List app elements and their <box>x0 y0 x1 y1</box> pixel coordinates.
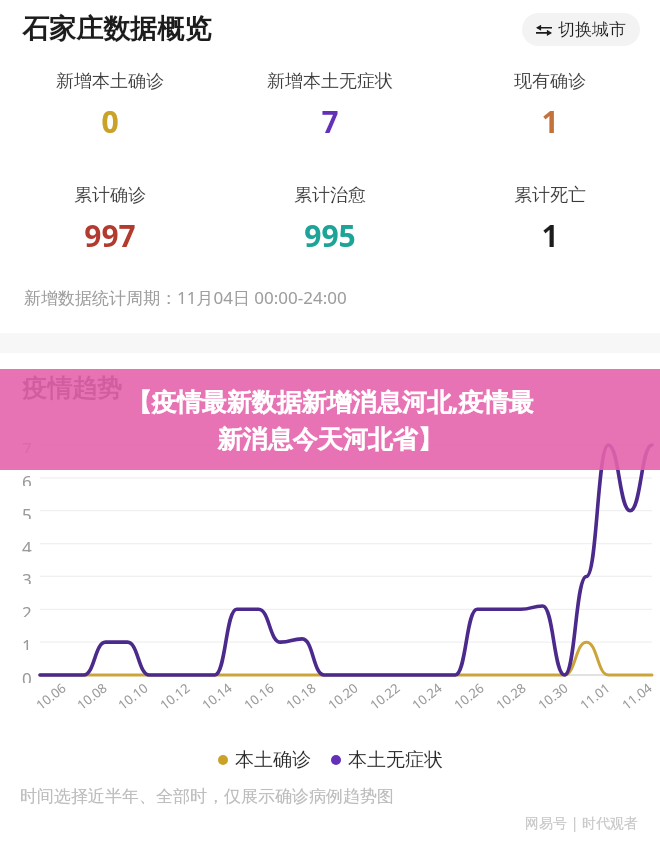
staticText: 1 <box>541 101 559 142</box>
staticText: 10.10 <box>114 678 152 713</box>
staticText: 3 <box>22 568 32 584</box>
staticText: 7 <box>22 437 32 453</box>
staticText: 10.14 <box>198 678 236 713</box>
staticText: 10.26 <box>450 678 488 713</box>
staticText: 10.20 <box>324 678 362 713</box>
staticText: 0 <box>101 101 119 142</box>
staticText: 10.18 <box>282 678 320 713</box>
staticText: 11.04 <box>618 678 656 713</box>
staticText: 995 <box>304 215 356 256</box>
button[interactable]: 本土确诊 <box>218 748 311 772</box>
staticText: 1 <box>22 634 32 650</box>
staticText: 累计死亡 <box>514 184 586 207</box>
staticText: 10.30 <box>534 678 572 713</box>
button[interactable]: 现有确诊 <box>440 70 660 142</box>
staticText: 时间选择近半年、全部时，仅展示确诊病例趋势图 <box>20 786 394 807</box>
staticText: 新增本土无症状 <box>267 70 393 93</box>
staticText: 997 <box>84 215 136 256</box>
staticText: 新增数据统计周期：11月04日 00:00-24:00 <box>24 286 347 309</box>
staticText: 0 <box>22 667 32 683</box>
staticText: 7 <box>321 101 339 142</box>
button[interactable]: Switch city <box>522 13 640 46</box>
staticText: 网易号 | 时代观者 <box>525 813 638 832</box>
staticText: 2 <box>22 601 32 617</box>
staticText: 新增本土确诊 <box>56 70 164 93</box>
staticText: 10.24 <box>408 678 446 713</box>
staticText: 累计治愈 <box>294 184 366 207</box>
staticText: 6 <box>22 470 32 486</box>
staticText: 石家庄数据概览 <box>22 12 211 46</box>
staticText: 现有确诊 <box>514 70 586 93</box>
staticText: 10.06 <box>32 678 70 713</box>
staticText: 1 <box>541 215 559 256</box>
staticText: 10.12 <box>156 678 194 713</box>
staticText: 本土确诊 <box>235 748 311 772</box>
staticText: 本土无症状 <box>348 748 443 772</box>
staticText: 4 <box>22 536 32 552</box>
button[interactable]: 累计死亡 <box>440 184 660 256</box>
staticText: 切换城市 <box>558 19 626 40</box>
staticText: 11.01 <box>576 678 614 713</box>
staticText: 10.22 <box>366 678 404 713</box>
staticText: 疫情趋势 <box>22 373 122 404</box>
staticText: 10.16 <box>240 678 278 713</box>
staticText: 【疫情最新数据新增消息河北,疫情最 新消息今天河北省】 <box>12 384 648 456</box>
staticText: 累计确诊 <box>74 184 146 207</box>
button[interactable]: 累计治愈 <box>220 184 440 256</box>
button[interactable]: 本土无症状 <box>331 748 443 772</box>
staticText: 10.08 <box>73 678 111 713</box>
staticText: 5 <box>22 503 32 519</box>
button[interactable]: 累计确诊 <box>0 184 220 256</box>
staticText: 10.28 <box>492 678 530 713</box>
other: Switch city <box>536 22 552 38</box>
button[interactable]: 新增本土确诊 <box>0 70 220 142</box>
button[interactable]: 新增本土无症状 <box>220 70 440 142</box>
